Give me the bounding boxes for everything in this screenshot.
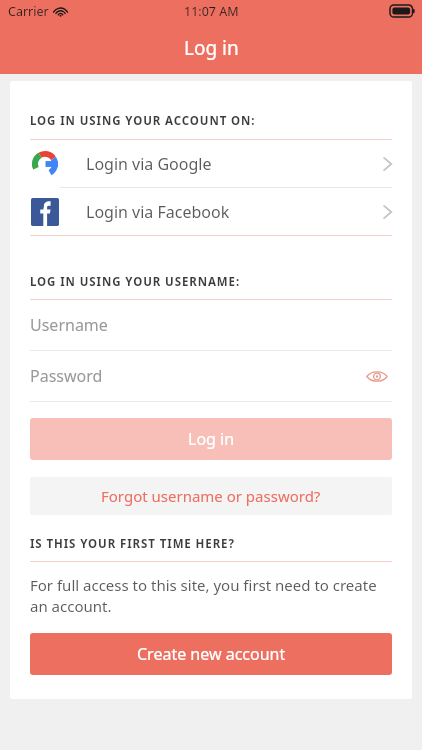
staticText: Password — [30, 365, 103, 387]
button[interactable]: Login via Facebook — [10, 188, 412, 235]
staticText: LOG IN USING YOUR ACCOUNT ON: — [30, 113, 256, 129]
staticText: 11:07 AM — [184, 3, 239, 20]
button[interactable]: Login via Google — [10, 140, 412, 187]
staticText: Log in — [188, 428, 235, 450]
staticText: Username — [30, 314, 108, 336]
staticText: Login via Facebook — [86, 201, 230, 223]
staticText: Carrier — [8, 3, 49, 20]
button[interactable]: Show password — [362, 361, 392, 391]
button[interactable]: Password — [10, 351, 412, 401]
staticText: Log in — [184, 35, 239, 61]
button[interactable]: Log in — [30, 418, 392, 460]
button[interactable]: Forgot username or password? — [30, 477, 392, 515]
button[interactable]: Username — [10, 300, 412, 350]
staticText: Forgot username or password? — [101, 486, 321, 506]
staticText: Create new account — [137, 643, 286, 665]
staticText: IS THIS YOUR FIRST TIME HERE? — [30, 536, 235, 552]
staticText: For full access to this site, you first … — [30, 575, 392, 617]
button[interactable]: Create new account — [30, 633, 392, 675]
staticText: Login via Google — [86, 153, 212, 175]
staticText: LOG IN USING YOUR USERNAME: — [30, 274, 241, 290]
